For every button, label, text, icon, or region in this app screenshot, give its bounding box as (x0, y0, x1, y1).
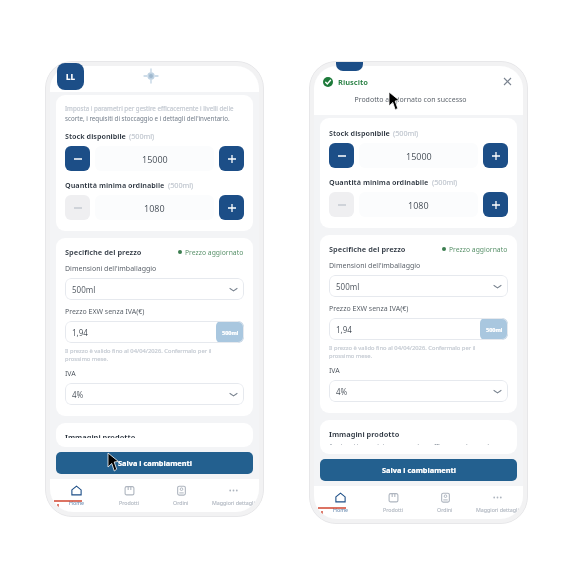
button[interactable]: 1,94 (329, 318, 508, 340)
staticText: 500ml (222, 329, 239, 336)
staticText: Il prezzo è valido fino al 04/04/2026. C… (329, 344, 476, 352)
button[interactable]: Prodotti (367, 486, 419, 519)
staticText: 4% (336, 386, 348, 397)
staticText: Imposta i parametri per gestire efficace… (65, 104, 234, 112)
staticText: 1,94 (336, 324, 352, 335)
button[interactable]: LL (57, 63, 84, 90)
button[interactable]: Prodotti (103, 479, 155, 512)
staticText: 500ml (486, 326, 503, 333)
staticText: Stock disponibile (65, 131, 126, 141)
staticText: (500ml) (393, 128, 419, 138)
staticText: (500ml) (432, 177, 458, 187)
staticText: scorte, i requisiti di stoccaggio e i de… (65, 114, 230, 122)
staticText: IVA (329, 366, 340, 376)
staticText: Quantità minima ordinabile (65, 180, 165, 190)
staticText: Specifiche del prezzo (65, 247, 142, 257)
staticText: Prezzo EXW senza IVA(€) (65, 307, 145, 317)
staticText: (500ml) (129, 131, 155, 141)
button[interactable]: Diminuisci (65, 146, 90, 171)
button[interactable]: Ordini (155, 479, 207, 512)
staticText: Prodotto aggiornato con successo (323, 95, 498, 105)
staticText: Maggiori dettagli (212, 499, 255, 506)
staticText: Maggiori dettagli (476, 506, 519, 513)
staticText: Salva i cambiamenti (118, 458, 192, 468)
button[interactable]: Salva i cambiamenti (56, 452, 253, 474)
button[interactable]: 1,94 (65, 321, 244, 343)
button[interactable]: 500ml (65, 278, 244, 300)
button[interactable]: Ordini (419, 486, 471, 519)
button[interactable]: Home (314, 486, 367, 519)
staticText: Quantità minima ordinabile (329, 177, 429, 187)
staticText: prossimo mese. (329, 352, 373, 360)
staticText: Ordini (173, 499, 189, 506)
button[interactable]: Aumenta (483, 192, 508, 217)
button[interactable]: Chiudi (501, 75, 514, 88)
button[interactable]: Maggiori dettagli (471, 486, 523, 519)
staticText: Prodotti (383, 506, 404, 513)
button[interactable]: 4% (65, 383, 244, 405)
staticText: Riuscito (338, 77, 368, 87)
button[interactable]: Salva i cambiamenti (320, 459, 517, 481)
staticText: Ordini (437, 506, 453, 513)
button[interactable]: 500ml (329, 275, 508, 297)
staticText: Il prezzo è valido fino al 04/04/2026. C… (65, 347, 212, 355)
staticText: Stock disponibile (329, 128, 390, 138)
staticText: 1080 (408, 199, 429, 211)
button[interactable]: Aumenta (219, 195, 244, 220)
staticText: Immagini prodotto (329, 429, 400, 439)
button[interactable]: Home (50, 479, 103, 512)
staticText: LL (66, 71, 75, 82)
staticText: 1,94 (72, 327, 88, 338)
button[interactable]: Diminuisci (65, 195, 90, 220)
staticText: 500ml (336, 281, 360, 292)
staticText: Dimensioni dell'imballaggio (329, 261, 421, 271)
button[interactable]: Aumenta (483, 143, 508, 168)
staticText: Home (69, 499, 85, 506)
staticText: Salva i cambiamenti (382, 465, 456, 475)
staticText: 15000 (406, 150, 432, 162)
staticText: 4% (72, 389, 84, 400)
staticText: 1080 (144, 202, 165, 214)
button[interactable]: Diminuisci (329, 192, 354, 217)
staticText: Prezzo EXW senza IVA(€) (329, 304, 409, 314)
staticText: (500ml) (168, 180, 194, 190)
staticText: 500ml (72, 284, 96, 295)
staticText: 15000 (142, 153, 168, 165)
staticText: Prezzo aggiornato (185, 248, 244, 257)
staticText: Aggiungi immagini per presentare efficac… (329, 442, 494, 445)
staticText: IVA (65, 369, 76, 379)
button[interactable]: Diminuisci (329, 143, 354, 168)
staticText: Prodotti (119, 499, 140, 506)
staticText: Prezzo aggiornato (449, 245, 508, 254)
button[interactable]: Aumenta (219, 146, 244, 171)
staticText: Home (333, 506, 349, 513)
button[interactable]: 4% (329, 380, 508, 402)
button[interactable]: Maggiori dettagli (207, 479, 259, 512)
staticText: prossimo mese. (65, 355, 109, 363)
staticText: Specifiche del prezzo (329, 244, 406, 254)
staticText: Immagini prodotto (65, 432, 136, 438)
staticText: Dimensioni dell'imballaggio (65, 264, 157, 274)
